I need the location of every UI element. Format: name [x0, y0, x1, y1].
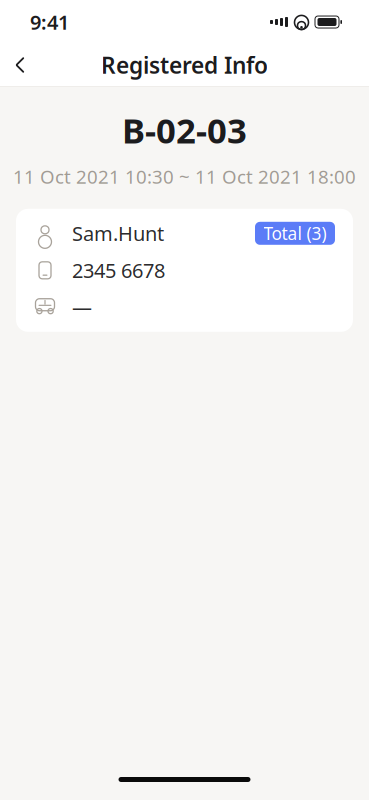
staticText: Registered Info	[101, 50, 268, 80]
staticText: Sam.Hunt	[72, 220, 164, 247]
staticText: B-02-03	[122, 107, 247, 153]
button[interactable]: Back	[0, 45, 40, 85]
staticText: 9:41	[30, 9, 69, 35]
button[interactable]: Total (3)	[255, 222, 335, 245]
staticText: Total (3)	[263, 222, 326, 245]
staticText: —	[72, 294, 92, 321]
staticText: 11 Oct 2021 10:30 ~ 11 Oct 2021 18:00	[13, 164, 356, 189]
staticText: 2345 6678	[72, 257, 165, 284]
